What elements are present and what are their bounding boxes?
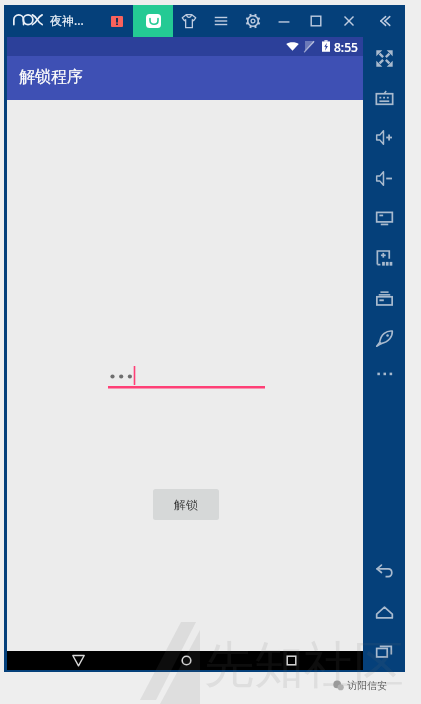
button[interactable]: Minimize — [271, 8, 297, 34]
button[interactable]: Home — [368, 596, 400, 628]
button[interactable]: Recents — [368, 635, 400, 667]
staticText: 解锁 — [174, 497, 198, 512]
staticText: 8:55 — [334, 39, 358, 55]
button[interactable]: Collapse — [371, 8, 397, 34]
button[interactable]: Home — [177, 651, 195, 670]
button[interactable]: Shared folder — [368, 282, 400, 314]
button[interactable]: Boost — [368, 322, 400, 354]
button[interactable]: Close — [336, 8, 362, 34]
staticText: 访阳信安 — [347, 679, 387, 692]
button[interactable]: Recents — [282, 651, 300, 670]
staticText: 夜神... — [50, 12, 84, 28]
button[interactable]: Keyboard — [368, 82, 400, 114]
button[interactable]: Back — [368, 555, 400, 587]
button[interactable]: App store — [133, 5, 173, 37]
button[interactable]: Fullscreen — [368, 42, 400, 74]
button[interactable]: Settings — [240, 8, 266, 34]
button[interactable]: Volume up — [368, 121, 400, 153]
button[interactable]: Volume down — [368, 162, 400, 194]
button[interactable]: Back — [69, 651, 87, 670]
staticText: 解锁程序 — [19, 67, 83, 87]
button[interactable]: Notice — [111, 16, 123, 27]
button[interactable]: Menu — [208, 8, 234, 34]
button[interactable]: More — [368, 357, 400, 389]
button[interactable]: 解锁 — [153, 489, 219, 520]
button[interactable]: Screenshot — [368, 202, 400, 234]
button[interactable]: Maximize — [303, 8, 329, 34]
button[interactable]: Apps — [176, 8, 202, 34]
staticText: 先知社区 — [204, 634, 404, 697]
button[interactable]: Install APK — [368, 242, 400, 274]
button[interactable]: Password field — [108, 351, 265, 388]
